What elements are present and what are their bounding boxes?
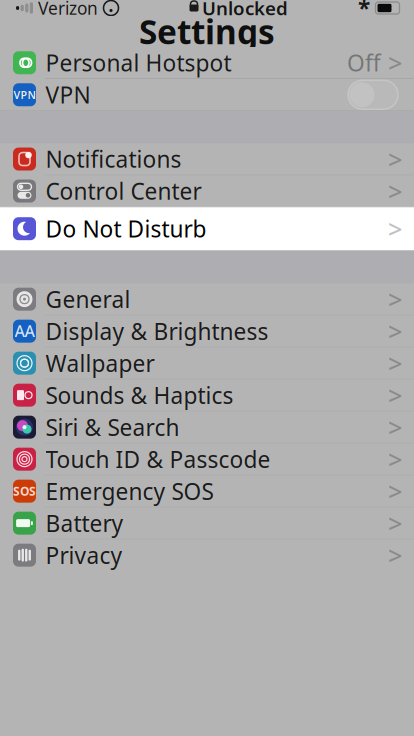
staticText: Sounds & Haptics bbox=[45, 380, 233, 410]
staticText: > bbox=[388, 212, 402, 245]
staticText: > bbox=[388, 314, 402, 348]
staticText: VPN bbox=[13, 88, 35, 102]
button[interactable]: Touch ID & Passcode bbox=[0, 443, 414, 475]
staticText: Verizon bbox=[38, 0, 98, 19]
staticText: > bbox=[388, 174, 402, 208]
staticText: Siri & Search bbox=[45, 412, 179, 442]
staticText: SOS bbox=[13, 483, 36, 499]
staticText: VPN bbox=[45, 80, 90, 110]
button[interactable]: Siri & Search bbox=[0, 411, 414, 443]
staticText: Unlocked bbox=[202, 0, 288, 20]
button[interactable]: Notifications bbox=[0, 143, 414, 175]
staticText: Personal Hotspot bbox=[45, 48, 231, 78]
button[interactable]: Do Not Disturb bbox=[0, 213, 414, 244]
staticText: Notifications bbox=[45, 144, 181, 174]
staticText: > bbox=[388, 410, 402, 444]
staticText: General bbox=[45, 284, 130, 314]
staticText: > bbox=[388, 282, 402, 316]
button[interactable]: General bbox=[0, 283, 414, 315]
staticText: > bbox=[388, 474, 402, 508]
button[interactable]: Control Center bbox=[0, 175, 414, 207]
staticText: Battery bbox=[45, 508, 123, 538]
button[interactable]: Personal Hotspot bbox=[0, 47, 414, 78]
button[interactable]: Wallpaper bbox=[0, 347, 414, 379]
staticText: Control Center bbox=[45, 176, 201, 206]
staticText: > bbox=[388, 346, 402, 380]
staticText: Do Not Disturb bbox=[45, 214, 206, 244]
staticText: Emergency SOS bbox=[45, 476, 213, 506]
staticText: Privacy bbox=[45, 540, 122, 570]
staticText: > bbox=[388, 46, 402, 79]
staticText: > bbox=[388, 538, 402, 572]
button[interactable]: SOS bbox=[0, 475, 414, 507]
staticText: Touch ID & Passcode bbox=[45, 444, 270, 474]
staticText: > bbox=[388, 506, 402, 540]
button[interactable]: AA bbox=[0, 315, 414, 347]
button[interactable]: Privacy bbox=[0, 539, 414, 571]
staticText: Off bbox=[347, 48, 381, 78]
staticText: > bbox=[388, 442, 402, 476]
button[interactable]: Battery bbox=[0, 507, 414, 539]
staticText: Wallpaper bbox=[45, 348, 154, 378]
staticText: * bbox=[358, 0, 370, 23]
staticText: > bbox=[388, 142, 402, 176]
staticText: AA bbox=[14, 320, 34, 342]
staticText: > bbox=[388, 378, 402, 412]
staticText: Display & Brightness bbox=[45, 316, 268, 346]
button[interactable]: Sounds & Haptics bbox=[0, 379, 414, 411]
staticText: Settings bbox=[139, 9, 275, 53]
button[interactable]: VPN bbox=[0, 79, 414, 110]
